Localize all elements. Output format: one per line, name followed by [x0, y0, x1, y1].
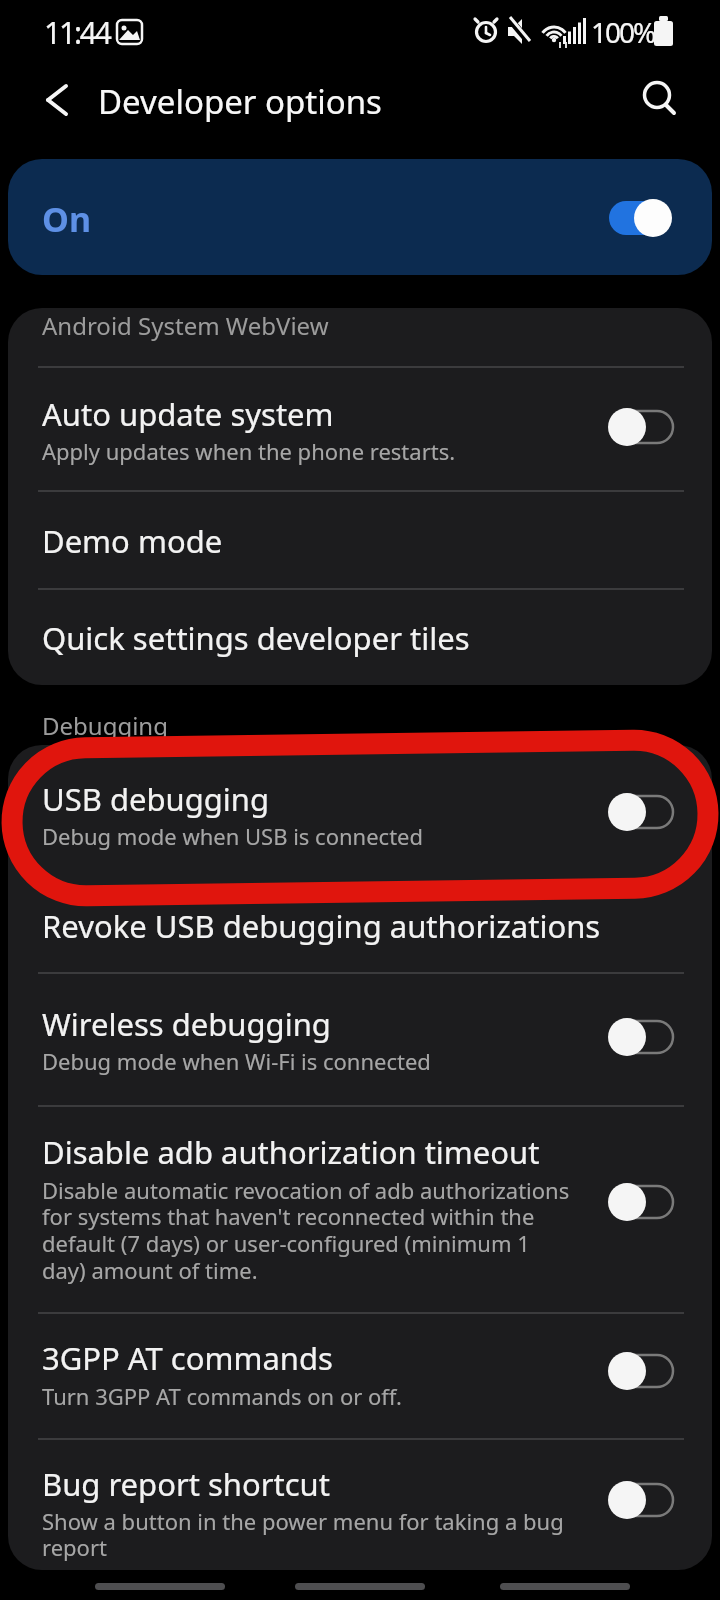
- staticText: Debug mode when USB is connected: [42, 821, 424, 851]
- button[interactable]: [608, 407, 674, 447]
- staticText: Bug report shortcut: [42, 1463, 330, 1505]
- button[interactable]: [608, 1480, 674, 1520]
- button[interactable]: [20, 72, 76, 128]
- staticText: Disable automatic revocation of adb auth…: [42, 1175, 570, 1286]
- staticText: Auto update system: [42, 393, 334, 435]
- button[interactable]: Wireless debugging: [0, 973, 720, 1104]
- staticText: On: [42, 196, 91, 242]
- button[interactable]: Revoke USB debugging authorizations: [0, 873, 720, 971]
- button[interactable]: Quick settings developer tiles: [0, 589, 720, 685]
- button[interactable]: [608, 198, 674, 238]
- staticText: USB debugging: [42, 778, 270, 820]
- staticText: Debug mode when Wi-Fi is connected: [42, 1046, 431, 1076]
- button[interactable]: Android System WebView: [0, 308, 720, 365]
- button[interactable]: [608, 1182, 674, 1222]
- staticText: Debugging: [42, 709, 168, 742]
- staticText: Show a button in the power menu for taki…: [42, 1506, 564, 1563]
- staticText: Demo mode: [42, 520, 223, 562]
- staticText: Revoke USB debugging authorizations: [42, 905, 601, 947]
- button[interactable]: On: [8, 159, 712, 275]
- staticText: 11:44: [44, 12, 110, 53]
- button[interactable]: USB debugging: [0, 745, 720, 871]
- staticText: 100%: [591, 13, 655, 51]
- staticText: Android System WebView: [42, 309, 329, 342]
- staticText: Apply updates when the phone restarts.: [42, 436, 456, 466]
- button[interactable]: Demo mode: [0, 491, 720, 587]
- button[interactable]: 3GPP AT commands: [0, 1313, 720, 1437]
- button[interactable]: [630, 68, 690, 128]
- button[interactable]: Bug report shortcut: [0, 1439, 720, 1570]
- staticText: Developer options: [98, 79, 382, 124]
- staticText: Quick settings developer tiles: [42, 617, 470, 659]
- button[interactable]: Disable adb authorization timeout: [0, 1106, 720, 1311]
- staticText: Disable adb authorization timeout: [42, 1131, 540, 1173]
- staticText: Wireless debugging: [42, 1003, 331, 1045]
- staticText: 3GPP AT commands: [42, 1337, 333, 1379]
- button[interactable]: Auto update system: [0, 367, 720, 489]
- button[interactable]: [608, 1017, 674, 1057]
- button[interactable]: [608, 792, 674, 832]
- button[interactable]: [608, 1351, 674, 1391]
- staticText: Turn 3GPP AT commands on or off.: [42, 1381, 402, 1411]
